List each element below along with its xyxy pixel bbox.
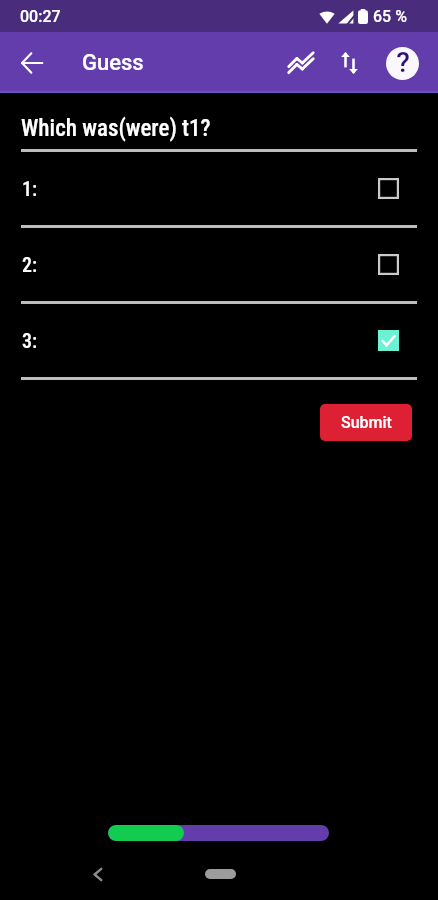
staticText: Submit [341,413,392,432]
button[interactable]: 3: [0,304,438,377]
staticText: 3: [22,329,38,352]
button[interactable]: Help [378,39,426,87]
staticText: Guess [82,50,144,76]
button[interactable]: Statistics [277,39,325,87]
button[interactable]: Back [4,35,60,91]
button[interactable]: Sort [325,39,373,87]
staticText: Which was(were) t1? [21,115,211,142]
staticText: 2: [22,253,38,276]
button[interactable]: Home [205,869,236,879]
button[interactable]: 2: [0,228,438,301]
staticText: 00:27 [20,7,61,26]
button[interactable]: Submit [320,404,412,441]
button[interactable]: Back [82,859,112,889]
staticText: 65 % [373,7,407,26]
button[interactable]: 1: [0,152,438,225]
staticText: 1: [22,177,38,200]
staticText: ? [396,47,410,79]
